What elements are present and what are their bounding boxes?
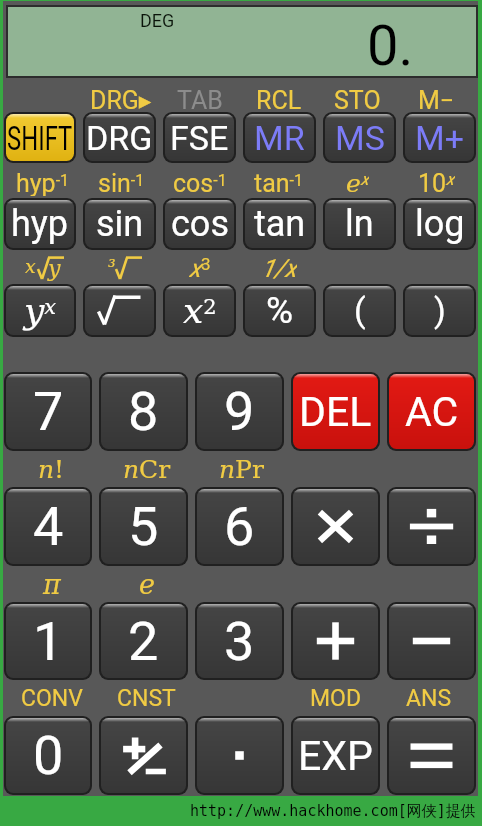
- button[interactable]: tan: [245, 200, 314, 248]
- staticText: FSE: [170, 118, 229, 158]
- staticText: 0: [33, 724, 64, 787]
- staticText: DRG: [86, 118, 153, 158]
- staticText: ): [434, 290, 446, 330]
- staticText: yx: [24, 290, 57, 332]
- button[interactable]: sin: [85, 200, 154, 248]
- staticText: (: [354, 290, 366, 330]
- staticText: nPr: [219, 455, 264, 484]
- button[interactable]: FSE: [165, 114, 234, 161]
- button[interactable]: minus: [389, 604, 474, 678]
- button[interactable]: ln: [325, 200, 394, 248]
- staticText: ANS: [406, 685, 452, 712]
- staticText: y: [48, 256, 61, 282]
- staticText: 2: [128, 610, 159, 673]
- button[interactable]: AC: [389, 374, 474, 449]
- staticText: ln: [345, 203, 374, 245]
- button[interactable]: 5: [101, 489, 186, 564]
- staticText: DRG▸: [90, 86, 152, 111]
- button[interactable]: %: [245, 286, 314, 335]
- button[interactable]: 1: [6, 604, 90, 678]
- staticText: log: [415, 203, 465, 245]
- staticText: http://www.hackhome.com[网侠]提供: [190, 802, 476, 821]
- staticText: x2: [183, 290, 217, 332]
- staticText: 8: [128, 380, 159, 443]
- staticText: 5: [128, 495, 159, 558]
- staticText: DEL: [299, 388, 372, 436]
- staticText: cos-1: [173, 169, 227, 196]
- staticText: ex: [346, 169, 369, 196]
- staticText: M+: [415, 118, 464, 158]
- button[interactable]: 7: [6, 374, 90, 449]
- staticText: sin: [96, 203, 144, 245]
- staticText: 7: [33, 380, 64, 443]
- staticText: MOD: [310, 685, 361, 712]
- button[interactable]: ): [405, 286, 474, 335]
- staticText: 9: [224, 380, 255, 443]
- button[interactable]: EXP: [293, 718, 378, 793]
- staticText: 6: [224, 495, 255, 558]
- staticText: hyp: [11, 203, 69, 245]
- staticText: CNST: [117, 685, 176, 712]
- staticText: RCL: [256, 86, 302, 111]
- button[interactable]: M+: [405, 114, 474, 161]
- staticText: EXP: [298, 732, 373, 780]
- button[interactable]: DRG: [85, 114, 154, 161]
- staticText: %: [266, 289, 294, 332]
- button[interactable]: square root: [85, 286, 154, 335]
- staticText: 1/x: [261, 254, 297, 282]
- staticText: e: [139, 569, 155, 600]
- staticText: M−: [418, 86, 455, 111]
- button[interactable]: log: [405, 200, 474, 248]
- button[interactable]: plus: [293, 604, 378, 678]
- staticText: x: [25, 255, 36, 277]
- staticText: CONV: [21, 685, 83, 712]
- staticText: π: [43, 569, 61, 600]
- button[interactable]: 3: [197, 604, 282, 678]
- staticText: MS: [335, 118, 385, 158]
- staticText: tan-1: [254, 169, 303, 196]
- button[interactable]: SHIFT: [6, 114, 74, 161]
- button[interactable]: MS: [325, 114, 394, 161]
- staticText: nCr: [123, 455, 171, 484]
- button[interactable]: 4: [6, 489, 90, 564]
- staticText: x3: [189, 254, 211, 282]
- staticText: STO: [334, 86, 381, 111]
- button[interactable]: equals: [389, 718, 474, 793]
- button[interactable]: hyp: [6, 200, 74, 248]
- staticText: 3: [224, 610, 255, 673]
- button[interactable]: 6: [197, 489, 282, 564]
- button[interactable]: cos: [165, 200, 234, 248]
- staticText: 0.: [367, 13, 414, 79]
- button[interactable]: 0: [6, 718, 90, 793]
- button[interactable]: (: [325, 286, 394, 335]
- button[interactable]: y to the power x: [6, 286, 74, 335]
- staticText: SHIFT: [7, 118, 73, 158]
- staticText: cos: [171, 203, 229, 245]
- staticText: sin-1: [98, 169, 145, 196]
- staticText: hyp-1: [16, 169, 70, 196]
- staticText: 4: [33, 495, 64, 558]
- button[interactable]: divide: [389, 489, 474, 564]
- staticText: 10x: [418, 169, 455, 196]
- button[interactable]: 8: [101, 374, 186, 449]
- button[interactable]: 9: [197, 374, 282, 449]
- button[interactable]: decimal point: [197, 718, 282, 793]
- button[interactable]: MR: [245, 114, 314, 161]
- staticText: tan: [254, 203, 306, 245]
- staticText: AC: [405, 388, 459, 436]
- staticText: ³: [108, 255, 116, 277]
- staticText: MR: [254, 118, 305, 158]
- staticText: DEG: [140, 10, 175, 31]
- staticText: n!: [38, 455, 65, 484]
- button[interactable]: x squared: [165, 286, 234, 335]
- button[interactable]: plus minus: [101, 718, 186, 793]
- button[interactable]: 2: [101, 604, 186, 678]
- staticText: 1: [33, 610, 64, 673]
- staticText: [128, 256, 135, 282]
- staticText: TAB: [177, 86, 223, 111]
- button[interactable]: multiply: [293, 489, 378, 564]
- button[interactable]: DEL: [293, 374, 378, 449]
